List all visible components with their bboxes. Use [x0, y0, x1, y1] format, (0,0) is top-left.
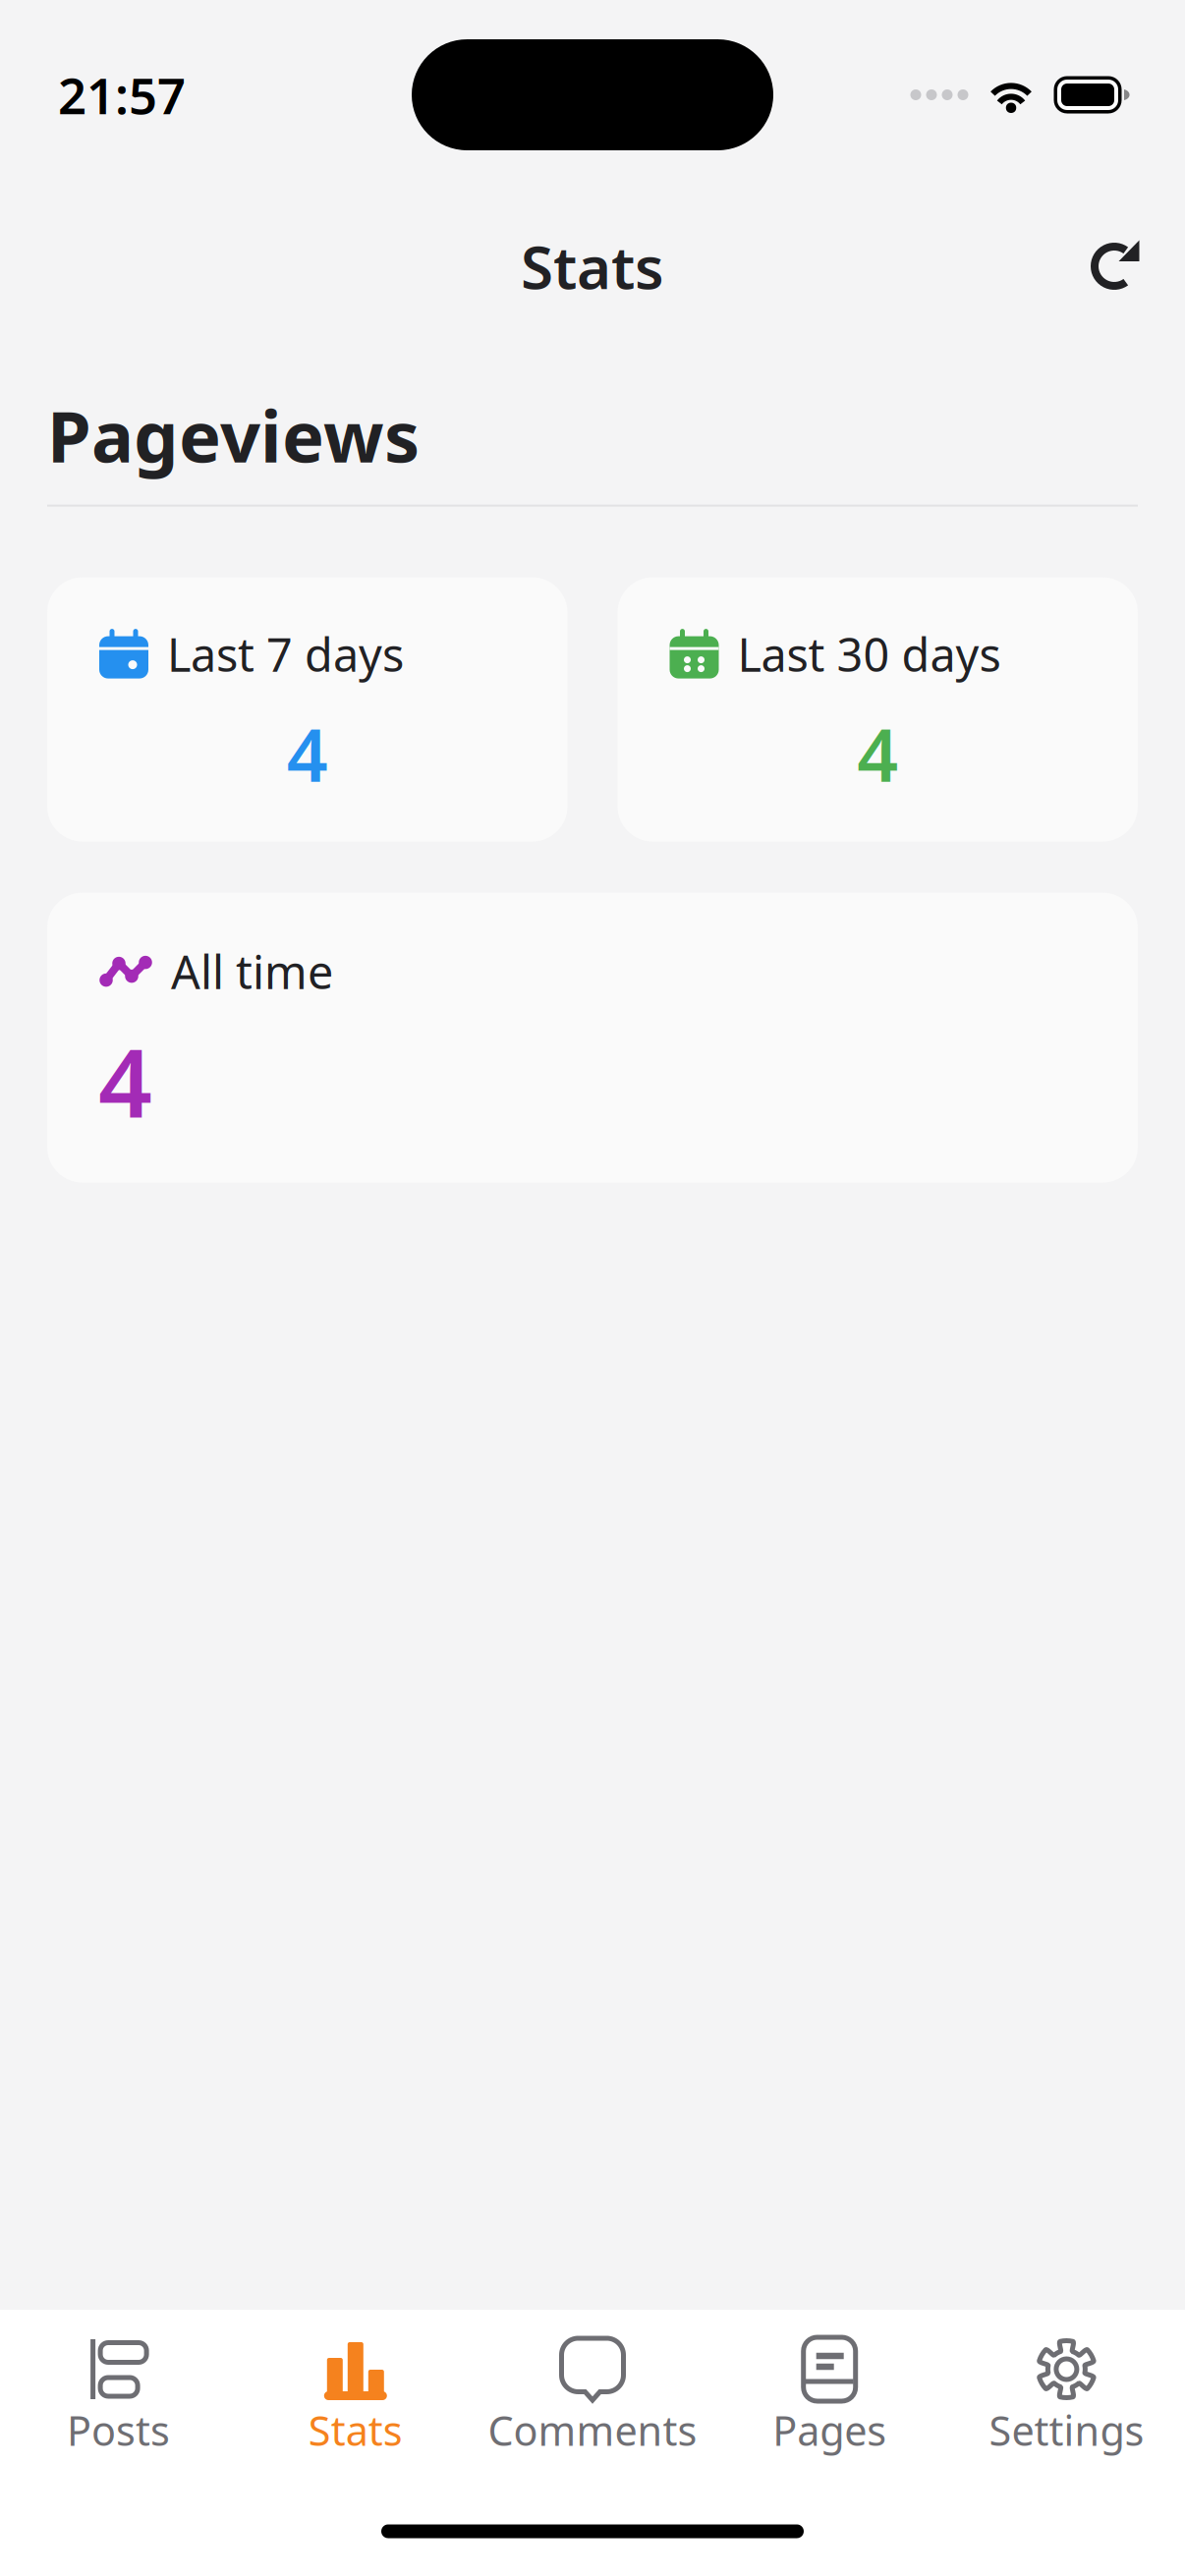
staticText: Comments — [488, 2403, 697, 2457]
staticText: Stats — [308, 2403, 403, 2457]
staticText: Pageviews — [47, 388, 420, 482]
staticText: 21:57 — [58, 62, 186, 128]
button[interactable]: Pages — [711, 2310, 948, 2487]
staticText: 4 — [98, 1018, 152, 1144]
button[interactable]: Refresh — [1050, 201, 1180, 331]
button[interactable]: Posts — [0, 2310, 237, 2487]
staticText: Stats — [521, 227, 664, 305]
staticText: 4 — [857, 706, 898, 802]
staticText: Last 7 days — [167, 623, 404, 684]
button[interactable]: Last 7 days — [47, 577, 567, 842]
button[interactable]: Stats — [237, 2310, 474, 2487]
staticText: Pages — [773, 2403, 886, 2457]
staticText: Last 30 days — [737, 623, 1001, 684]
staticText: All time — [171, 941, 333, 1002]
staticText: Settings — [989, 2403, 1144, 2457]
button[interactable]: All time — [47, 893, 1138, 1182]
staticText: Posts — [67, 2403, 170, 2457]
button[interactable]: Comments — [474, 2310, 711, 2487]
button[interactable]: Last 30 days — [618, 577, 1138, 842]
button[interactable]: Settings — [948, 2310, 1185, 2487]
staticText: 4 — [287, 706, 328, 802]
